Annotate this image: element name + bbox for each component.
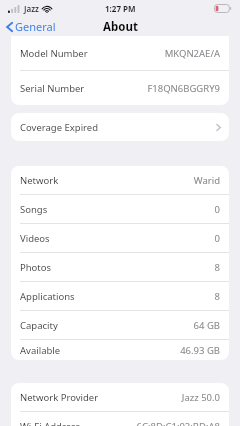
staticText: Model Number (20, 47, 88, 60)
button[interactable]: Applications (11, 282, 229, 310)
button[interactable]: Videos (11, 224, 229, 252)
staticText: 6C:8D:C1:02:BD:A8 (136, 420, 220, 426)
staticText: Network (20, 174, 59, 187)
staticText: F18QN6BGGRY9 (147, 82, 220, 95)
staticText: General (15, 19, 56, 34)
staticText: Network Provider (20, 391, 99, 404)
staticText: Capacity (20, 319, 58, 332)
staticText: 64 GB (193, 319, 220, 332)
staticText: 0 (214, 232, 220, 245)
staticText: Coverage Expired (20, 121, 99, 134)
staticText: Wi-Fi Address (20, 420, 81, 426)
button[interactable]: Capacity (11, 311, 229, 339)
staticText: 8 (214, 261, 220, 274)
button[interactable]: Network (11, 166, 229, 194)
button[interactable]: Coverage Expired (11, 113, 229, 141)
staticText: Applications (20, 290, 75, 303)
staticText: Videos (20, 232, 50, 245)
button[interactable]: Network Provider (11, 383, 229, 411)
staticText: Available (20, 344, 61, 357)
button[interactable]: Photos (11, 253, 229, 281)
staticText: About (103, 19, 138, 35)
staticText: MKQN2AE/A (164, 47, 220, 60)
button[interactable]: Available (11, 340, 229, 360)
staticText: Jazz 50.0 (181, 391, 220, 404)
button[interactable]: General (0, 17, 62, 36)
staticText: Jazz (24, 3, 39, 14)
staticText: 1:27 PM (105, 3, 136, 14)
staticText: 8 (214, 290, 220, 303)
staticText: Warid (193, 174, 220, 187)
staticText: 46.93 GB (180, 344, 220, 357)
staticText: Serial Number (20, 82, 85, 95)
staticText: 0 (214, 203, 220, 216)
button[interactable]: Wi-Fi Address (11, 412, 229, 426)
other: Open coverage details (216, 123, 221, 132)
button[interactable]: Serial Number (11, 71, 229, 105)
staticText: Songs (20, 203, 48, 216)
button[interactable]: Songs (11, 195, 229, 223)
button[interactable]: Model Number (11, 36, 229, 70)
staticText: Photos (20, 261, 52, 274)
